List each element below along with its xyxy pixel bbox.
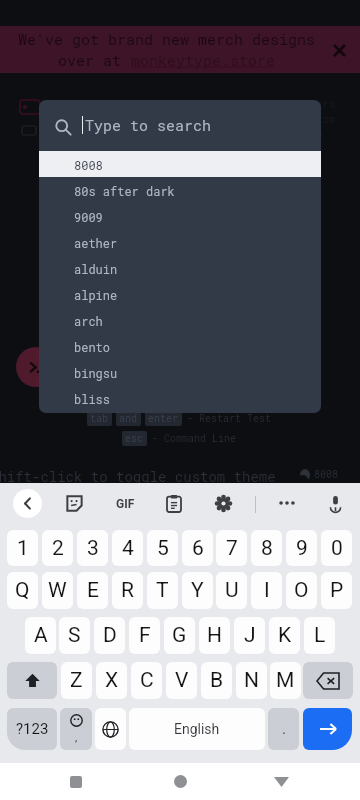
button[interactable]: Y [182,572,213,609]
button[interactable]: S [59,617,90,654]
staticText: C [140,668,154,693]
staticText: bento [74,339,111,355]
button[interactable]: Back [13,489,42,518]
button[interactable]: V [166,662,197,699]
staticText: esc [125,432,144,445]
button[interactable]: Settings [211,491,235,515]
staticText: 9009 [74,209,103,225]
button[interactable]: D [94,617,125,654]
button[interactable]: 8008 [39,151,321,177]
staticText: 7 [226,536,238,561]
staticText: D [103,623,117,648]
button[interactable]: 80s after dark [39,177,321,203]
staticText: ?123 [16,720,49,738]
button[interactable]: arch [39,307,321,333]
button[interactable]: alpine [39,281,321,307]
button[interactable]: bingsu [39,359,321,385]
button[interactable]: Clipboard [162,491,186,515]
staticText: M [276,668,295,693]
button[interactable]: . [268,708,299,750]
staticText: , [75,731,78,744]
button[interactable]: bliss [39,385,321,411]
staticText: A [34,623,48,648]
button[interactable]: W [42,572,73,609]
button[interactable]: F [129,617,160,654]
button[interactable]: A [25,617,56,654]
button[interactable]: Emoji [60,708,92,750]
button[interactable]: 0 [321,530,352,566]
staticText: tab [90,412,109,425]
staticText: Z [70,668,83,693]
staticText: T [156,578,169,603]
staticText: Y [191,578,204,603]
button[interactable]: J [234,617,265,654]
button[interactable]: Close banner [326,37,352,63]
button[interactable]: C [131,662,162,699]
button[interactable]: 3 [77,530,108,566]
button[interactable]: Q [7,572,38,609]
button[interactable]: R [112,572,143,609]
button[interactable]: I [251,572,282,609]
button[interactable]: U [216,572,247,609]
button[interactable]: X [96,662,127,699]
staticText: alpine [74,287,118,303]
staticText: X [105,668,119,693]
button[interactable]: English [129,708,265,750]
button[interactable]: bento [39,333,321,359]
button[interactable]: E [77,572,108,609]
button[interactable]: More options [275,491,299,515]
button[interactable]: M [270,662,301,699]
staticText: enter [148,412,179,425]
button[interactable]: 8 [251,530,282,566]
button[interactable]: B [201,662,232,699]
staticText: aether [74,235,118,251]
staticText: tom [316,111,336,126]
button[interactable]: Recents [56,763,96,800]
button[interactable]: Home [160,763,200,800]
button[interactable]: 6 [182,530,213,566]
button[interactable]: GIF [112,491,138,517]
button[interactable]: G [164,617,195,654]
button[interactable]: aether [39,229,321,255]
staticText: B [210,668,224,693]
staticText: 8008 [314,468,339,481]
button[interactable]: 7 [216,530,247,566]
staticText: English [174,721,220,737]
button[interactable]: Z [61,662,92,699]
staticText: P [330,578,344,603]
staticText: 6 [192,536,204,561]
button[interactable]: 1 [7,530,38,566]
button[interactable]: 2 [42,530,73,566]
staticText: arch [74,313,103,329]
button[interactable]: alduin [39,255,321,281]
staticText: alduin [74,261,118,277]
button[interactable]: Enter [303,708,352,750]
staticText: shift-click to toggle custom theme [0,467,276,485]
button[interactable]: T [147,572,178,609]
button[interactable]: 9 [286,530,317,566]
staticText: 1 [17,536,29,561]
staticText: and [119,412,138,425]
button[interactable]: Stickers [62,491,86,515]
staticText: 9 [296,536,308,561]
button[interactable]: O [286,572,317,609]
button[interactable]: Shift [7,662,57,699]
staticText: ers [316,96,336,111]
button[interactable]: Change language [95,708,126,750]
button[interactable]: ?123 [7,708,57,750]
button[interactable]: 4 [112,530,143,566]
button[interactable]: Backspace [303,662,353,699]
button[interactable]: H [199,617,230,654]
button[interactable]: N [236,662,267,699]
button[interactable]: 9009 [39,203,321,229]
staticText: bingsu [74,365,118,381]
button[interactable]: P [321,572,352,609]
button[interactable]: L [304,617,335,654]
button[interactable]: K [269,617,300,654]
staticText: U [225,578,239,603]
button[interactable]: 5 [147,530,178,566]
button[interactable]: Voice input [323,491,347,515]
button[interactable]: Command line [16,347,56,387]
staticText: monkeytype.store [131,50,276,70]
button[interactable]: Back [261,763,301,800]
